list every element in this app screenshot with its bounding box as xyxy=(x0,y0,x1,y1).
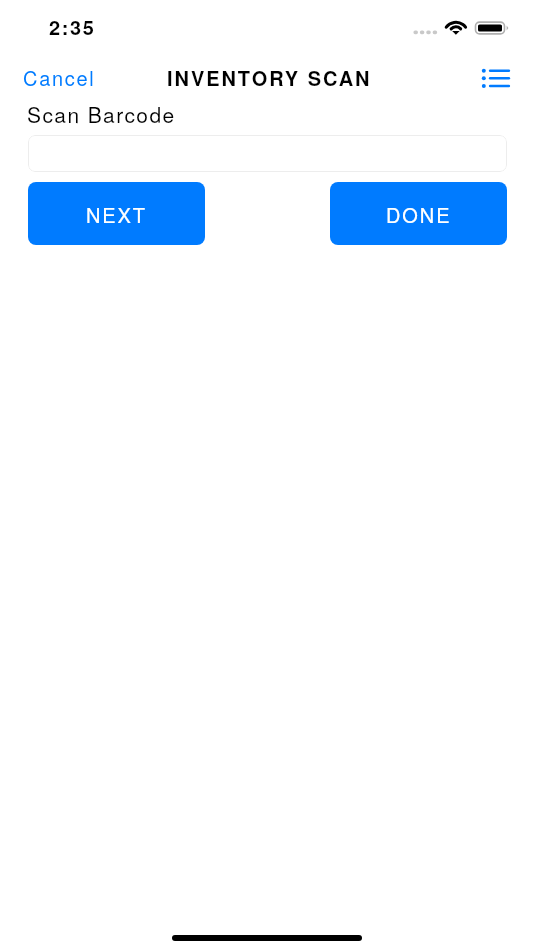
staticText: INVENTORY SCAN xyxy=(167,62,372,92)
staticText: Cancel xyxy=(23,62,96,92)
staticText: 2:35 xyxy=(49,11,96,41)
staticText: Scan Barcode xyxy=(27,102,176,128)
button[interactable] xyxy=(28,135,507,172)
button[interactable]: Cancel xyxy=(0,59,112,95)
staticText: DONE xyxy=(386,199,452,229)
button[interactable]: Show list xyxy=(468,58,522,98)
button[interactable]: DONE xyxy=(330,182,507,245)
button[interactable]: NEXT xyxy=(28,182,205,245)
staticText: NEXT xyxy=(86,199,147,229)
